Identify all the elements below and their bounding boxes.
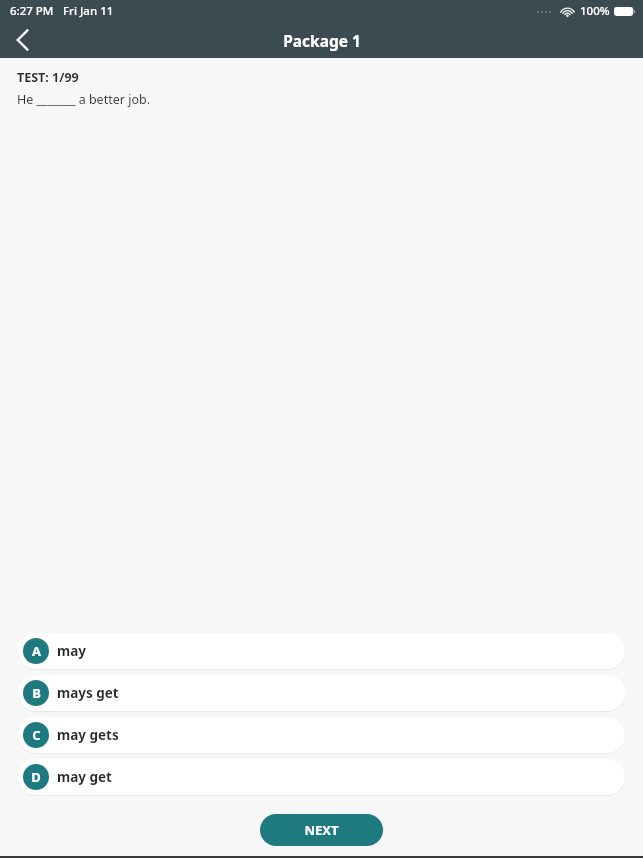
button[interactable]: Back xyxy=(0,22,44,58)
staticText: B xyxy=(32,684,41,702)
staticText: 6:27 PM xyxy=(10,3,54,19)
staticText: may gets xyxy=(57,726,119,744)
button[interactable]: A xyxy=(18,633,625,669)
staticText: may xyxy=(57,642,86,660)
button[interactable]: C xyxy=(18,717,625,753)
staticText: Fri Jan 11 xyxy=(63,3,114,19)
staticText: TEST: 1/99 xyxy=(17,69,79,86)
button[interactable]: NEXT xyxy=(260,814,383,846)
staticText: 100% xyxy=(580,3,610,19)
staticText: may get xyxy=(57,768,112,786)
staticText: He _______ a better job. xyxy=(17,91,150,108)
staticText: Package 1 xyxy=(283,30,361,51)
staticText: C xyxy=(32,726,41,744)
staticText: mays get xyxy=(57,684,119,702)
staticText: NEXT xyxy=(304,821,339,839)
staticText: D xyxy=(31,768,41,786)
button[interactable]: B xyxy=(18,675,625,711)
button[interactable]: D xyxy=(18,759,625,795)
staticText: A xyxy=(32,642,41,660)
